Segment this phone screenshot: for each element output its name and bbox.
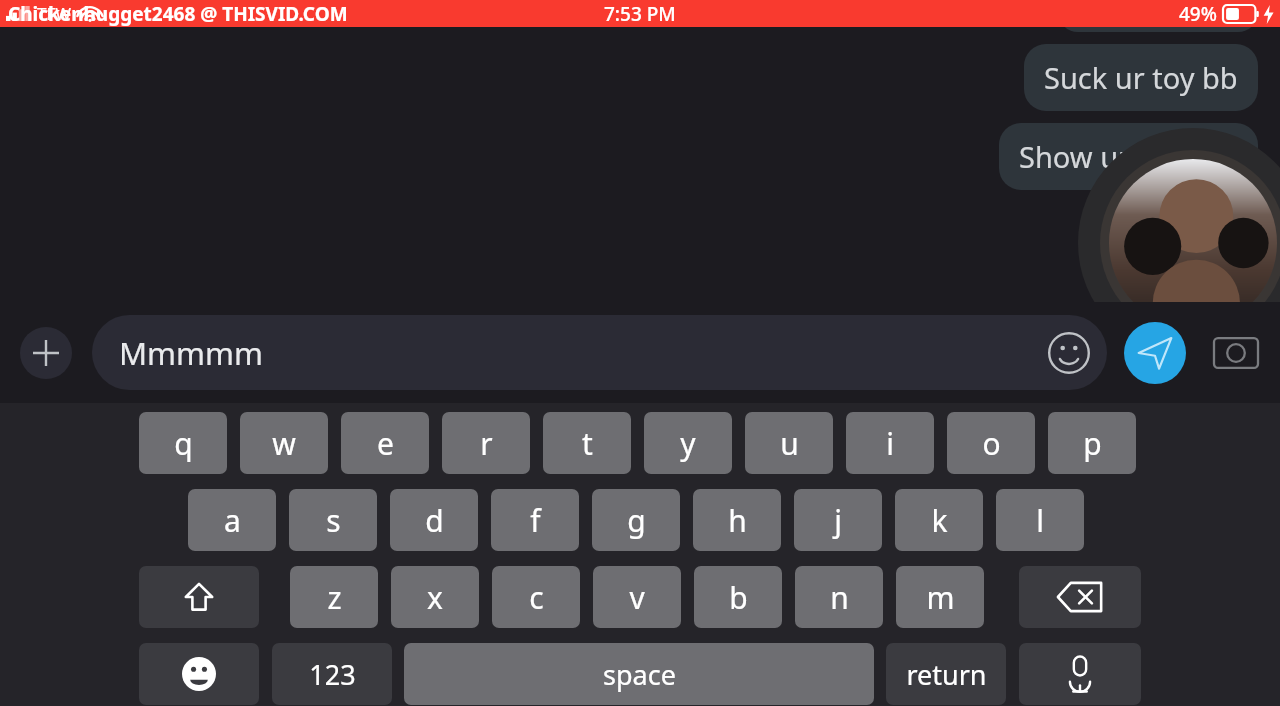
staticText: Mmmmm bbox=[119, 332, 264, 374]
staticText: z bbox=[327, 577, 342, 618]
button[interactable]: p bbox=[1048, 412, 1136, 474]
staticText: g bbox=[627, 500, 646, 541]
button[interactable]: z bbox=[290, 566, 378, 628]
button[interactable]: m bbox=[896, 566, 984, 628]
button[interactable]: n bbox=[795, 566, 883, 628]
button[interactable]: l bbox=[996, 489, 1084, 551]
staticText: 49% bbox=[1179, 1, 1217, 27]
button[interactable]: y bbox=[644, 412, 732, 474]
staticText: q bbox=[174, 423, 193, 464]
staticText: f bbox=[530, 500, 541, 541]
staticText: Show ur face bb bbox=[1019, 137, 1238, 176]
staticText: d bbox=[425, 500, 444, 541]
button[interactable]: f bbox=[491, 489, 579, 551]
staticText: j bbox=[834, 500, 842, 541]
staticText: u bbox=[780, 423, 799, 464]
button[interactable]: Backspace bbox=[1019, 566, 1141, 628]
staticText: s bbox=[326, 500, 341, 541]
button[interactable]: x bbox=[391, 566, 479, 628]
button[interactable]: a bbox=[188, 489, 276, 551]
button[interactable]: 123 bbox=[272, 643, 392, 705]
button[interactable]: j bbox=[794, 489, 882, 551]
staticText: space bbox=[603, 656, 676, 693]
button[interactable]: b bbox=[694, 566, 782, 628]
button[interactable]: return bbox=[886, 643, 1006, 705]
button[interactable]: k bbox=[895, 489, 983, 551]
button[interactable]: space bbox=[404, 643, 874, 705]
staticText: TFW bbox=[37, 2, 72, 25]
button[interactable]: t bbox=[543, 412, 631, 474]
staticText: 7:53 PM bbox=[604, 1, 676, 27]
button[interactable]: Shift bbox=[139, 566, 259, 628]
staticText: b bbox=[729, 577, 748, 618]
button[interactable]: Suck ur toy bb bbox=[1024, 44, 1258, 111]
button[interactable]: d bbox=[390, 489, 478, 551]
button[interactable]: Mmmmm bbox=[92, 315, 1107, 390]
staticText: n bbox=[830, 577, 849, 618]
staticText: m bbox=[926, 577, 955, 618]
staticText: Suck ur toy bb bbox=[1044, 58, 1238, 97]
button[interactable]: o bbox=[947, 412, 1035, 474]
staticText: p bbox=[1083, 423, 1102, 464]
staticText: h bbox=[728, 500, 747, 541]
staticText: o bbox=[982, 423, 1001, 464]
button[interactable]: g bbox=[592, 489, 680, 551]
button[interactable]: r bbox=[442, 412, 530, 474]
button[interactable]: e bbox=[341, 412, 429, 474]
staticText: l bbox=[1036, 500, 1044, 541]
button[interactable]: c bbox=[492, 566, 580, 628]
staticText: c bbox=[529, 577, 544, 618]
button[interactable]: u bbox=[745, 412, 833, 474]
staticText: x bbox=[427, 577, 443, 618]
button[interactable]: q bbox=[139, 412, 227, 474]
staticText: Chickenhugget2468 @ THISVID.COM bbox=[8, 1, 348, 27]
staticText: w bbox=[272, 423, 296, 464]
staticText: return bbox=[906, 656, 987, 693]
button[interactable]: w bbox=[240, 412, 328, 474]
button[interactable]: h bbox=[693, 489, 781, 551]
staticText: a bbox=[224, 500, 241, 541]
button[interactable] bbox=[1058, 0, 1258, 32]
button[interactable]: i bbox=[846, 412, 934, 474]
staticText: i bbox=[886, 423, 894, 464]
button[interactable]: Emoji bbox=[1043, 327, 1095, 379]
staticText: t bbox=[582, 423, 593, 464]
button[interactable]: v bbox=[593, 566, 681, 628]
button[interactable]: Add attachment bbox=[20, 327, 72, 379]
button[interactable]: Send bbox=[1124, 322, 1186, 384]
staticText: r bbox=[480, 423, 493, 464]
button[interactable]: Emoji keyboard bbox=[139, 643, 259, 705]
staticText: e bbox=[377, 423, 394, 464]
button[interactable]: Voice input bbox=[1019, 643, 1141, 705]
staticText: 123 bbox=[309, 656, 356, 693]
button[interactable]: Show ur face bb bbox=[999, 123, 1258, 190]
button[interactable]: Camera bbox=[1208, 325, 1264, 381]
staticText: y bbox=[680, 423, 696, 464]
staticText: v bbox=[629, 577, 645, 618]
staticText: k bbox=[931, 500, 948, 541]
button[interactable]: s bbox=[289, 489, 377, 551]
button[interactable]: Video call bubble bbox=[1078, 128, 1280, 358]
